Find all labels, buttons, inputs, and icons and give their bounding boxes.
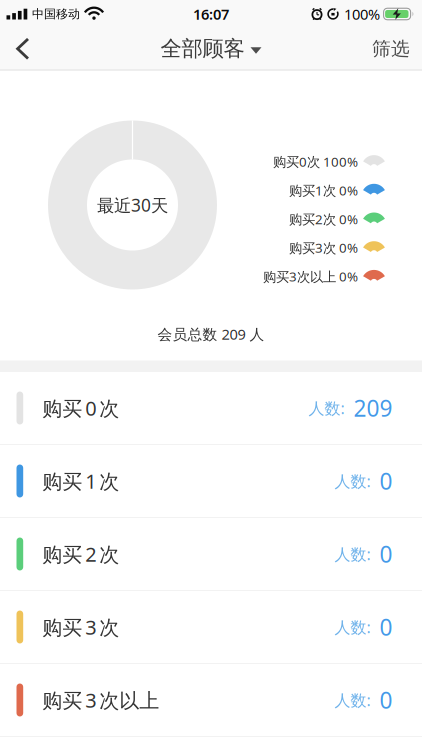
staticText: 209 [353,393,392,423]
staticText: 0 [379,466,392,496]
button[interactable]: 购买 0 次 [0,372,422,445]
staticText: 人数: [334,616,370,638]
staticText: 0 [379,685,392,715]
button[interactable]: Back [0,28,30,70]
staticText: 购买1次 0% [289,181,358,199]
button[interactable]: 购买 3 次 [0,591,422,664]
button[interactable]: 全部顾客 [160,36,261,62]
staticText: 人数: [334,470,370,492]
button[interactable]: 购买 1 次 [0,445,422,518]
staticText: 购买 0 次 [42,395,119,421]
staticText: 人数: [334,543,370,565]
staticText: 0 [379,612,392,642]
staticText: 100% [344,4,380,24]
staticText: 最近30天 [97,193,168,216]
staticText: 0 [379,539,392,569]
staticText: 购买 1 次 [42,468,119,494]
staticText: 人数: [334,689,370,711]
button[interactable]: 购买 3 次以上 [0,664,422,737]
staticText: 中国移动 [32,7,80,21]
staticText: 购买 3 次 [42,614,119,640]
staticText: 筛选 [372,37,410,60]
staticText: 购买0次 100% [273,153,358,170]
button[interactable]: 筛选 [372,29,422,68]
staticText: 购买3次以上 0% [263,267,358,285]
staticText: 购买 3 次以上 [42,687,159,713]
staticText: 购买 2 次 [42,541,119,567]
staticText: 全部顾客 [160,36,244,62]
staticText: 购买2次 0% [289,210,358,228]
staticText: 16:07 [193,4,229,24]
staticText: 会员总数 209 人 [157,324,264,344]
button[interactable]: 购买 2 次 [0,518,422,591]
staticText: 人数: [308,397,344,419]
staticText: 购买3次 0% [289,239,358,256]
